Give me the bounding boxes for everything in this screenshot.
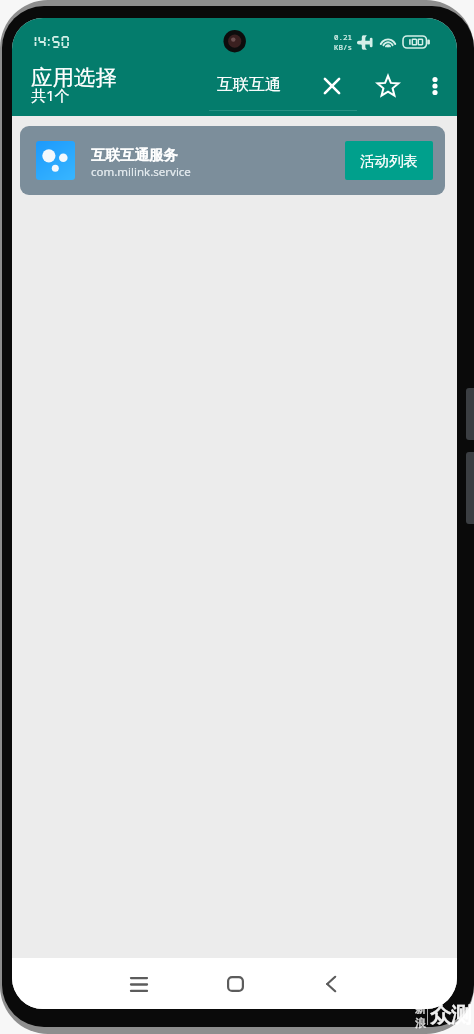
- staticText: KB/s: [334, 42, 352, 52]
- button[interactable]: 互联互通: [209, 66, 289, 104]
- staticText: 浪: [415, 1016, 426, 1030]
- staticText: 活动列表: [360, 152, 418, 170]
- staticText: 0.21: [334, 32, 352, 42]
- button[interactable]: 互联互通服务: [20, 126, 445, 195]
- staticText: 互联互通服务: [91, 146, 178, 164]
- staticText: 新: [415, 1002, 426, 1016]
- button[interactable]: Recents: [115, 960, 163, 1008]
- staticText: 互联互通: [217, 75, 281, 95]
- staticText: com.milink.service: [91, 164, 191, 180]
- button[interactable]: Back: [307, 960, 355, 1008]
- staticText: 应用选择: [31, 64, 117, 91]
- button[interactable]: Favorite: [366, 64, 410, 108]
- staticText: 共1个: [31, 85, 70, 105]
- staticText: 众测: [430, 1002, 472, 1028]
- button[interactable]: More options: [413, 64, 457, 108]
- button[interactable]: Close: [310, 64, 354, 108]
- button[interactable]: 活动列表: [345, 141, 433, 180]
- button[interactable]: Home: [211, 960, 259, 1008]
